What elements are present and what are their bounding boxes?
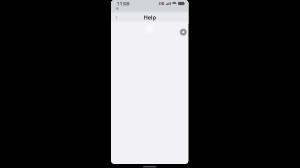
button[interactable]: Close [178, 27, 188, 37]
button[interactable]: Back [111, 13, 121, 22]
staticText: Help [144, 14, 156, 21]
staticText: 11:08 [117, 0, 130, 7]
